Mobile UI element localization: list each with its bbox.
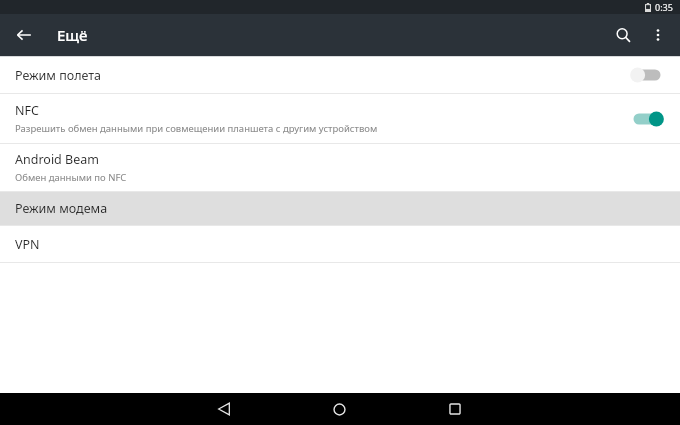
button[interactable]: Режим модема (0, 192, 680, 225)
button[interactable]: Включено (628, 108, 666, 130)
staticText: NFC (15, 102, 39, 119)
button[interactable]: Поиск (605, 17, 641, 53)
button[interactable]: Обзор (437, 393, 473, 425)
button[interactable]: Режим полета (0, 57, 680, 93)
staticText: Android Beam (15, 151, 99, 168)
button[interactable]: Назад (8, 19, 40, 51)
button[interactable]: NFC (0, 94, 680, 143)
button[interactable]: Android Beam (0, 144, 680, 191)
staticText: Обмен данными по NFC (15, 171, 127, 184)
button[interactable]: Ещё параметры (641, 18, 675, 52)
staticText: Ещё (57, 25, 88, 45)
staticText: Разрешить обмен данными при совмещении п… (15, 122, 378, 135)
button[interactable]: Назад (206, 393, 242, 425)
staticText: Режим полета (15, 67, 102, 84)
button[interactable]: VPN (0, 226, 680, 262)
button[interactable]: Главный экран (321, 393, 357, 425)
button[interactable]: Выключено (628, 64, 666, 86)
staticText: VPN (15, 236, 40, 253)
staticText: 0:35 (655, 1, 673, 13)
staticText: Режим модема (15, 200, 108, 217)
